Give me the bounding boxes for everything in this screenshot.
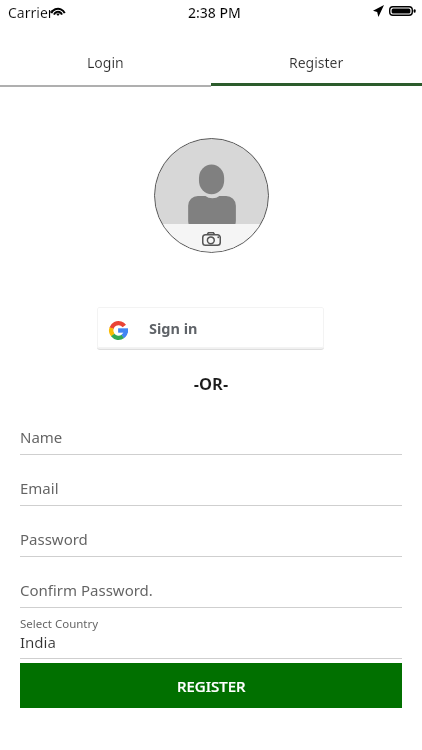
button[interactable]: Email [20, 472, 402, 523]
staticText: Confirm Password. [20, 580, 153, 600]
button[interactable]: Name [20, 421, 402, 472]
staticText: REGISTER [177, 676, 246, 696]
staticText: Select Country [20, 616, 99, 632]
button[interactable]: India [20, 632, 402, 652]
button[interactable]: Password [20, 523, 402, 574]
button[interactable]: Sign in [97, 307, 324, 348]
staticText: Login [87, 53, 124, 72]
staticText: Sign in [149, 318, 198, 338]
button[interactable]: Login [0, 38, 211, 86]
button[interactable]: Confirm Password. [20, 574, 402, 625]
staticText: Email [20, 478, 59, 498]
button[interactable]: Change profile photo [154, 138, 269, 253]
staticText: 2:38 PM [188, 3, 241, 22]
staticText: Name [20, 427, 63, 447]
button[interactable]: REGISTER [20, 663, 402, 708]
staticText: Register [289, 53, 344, 72]
staticText: Carrier [8, 3, 54, 22]
staticText: Password [20, 529, 88, 549]
staticText: India [20, 632, 56, 652]
staticText: -OR- [0, 372, 422, 394]
button[interactable]: Register [211, 38, 422, 86]
